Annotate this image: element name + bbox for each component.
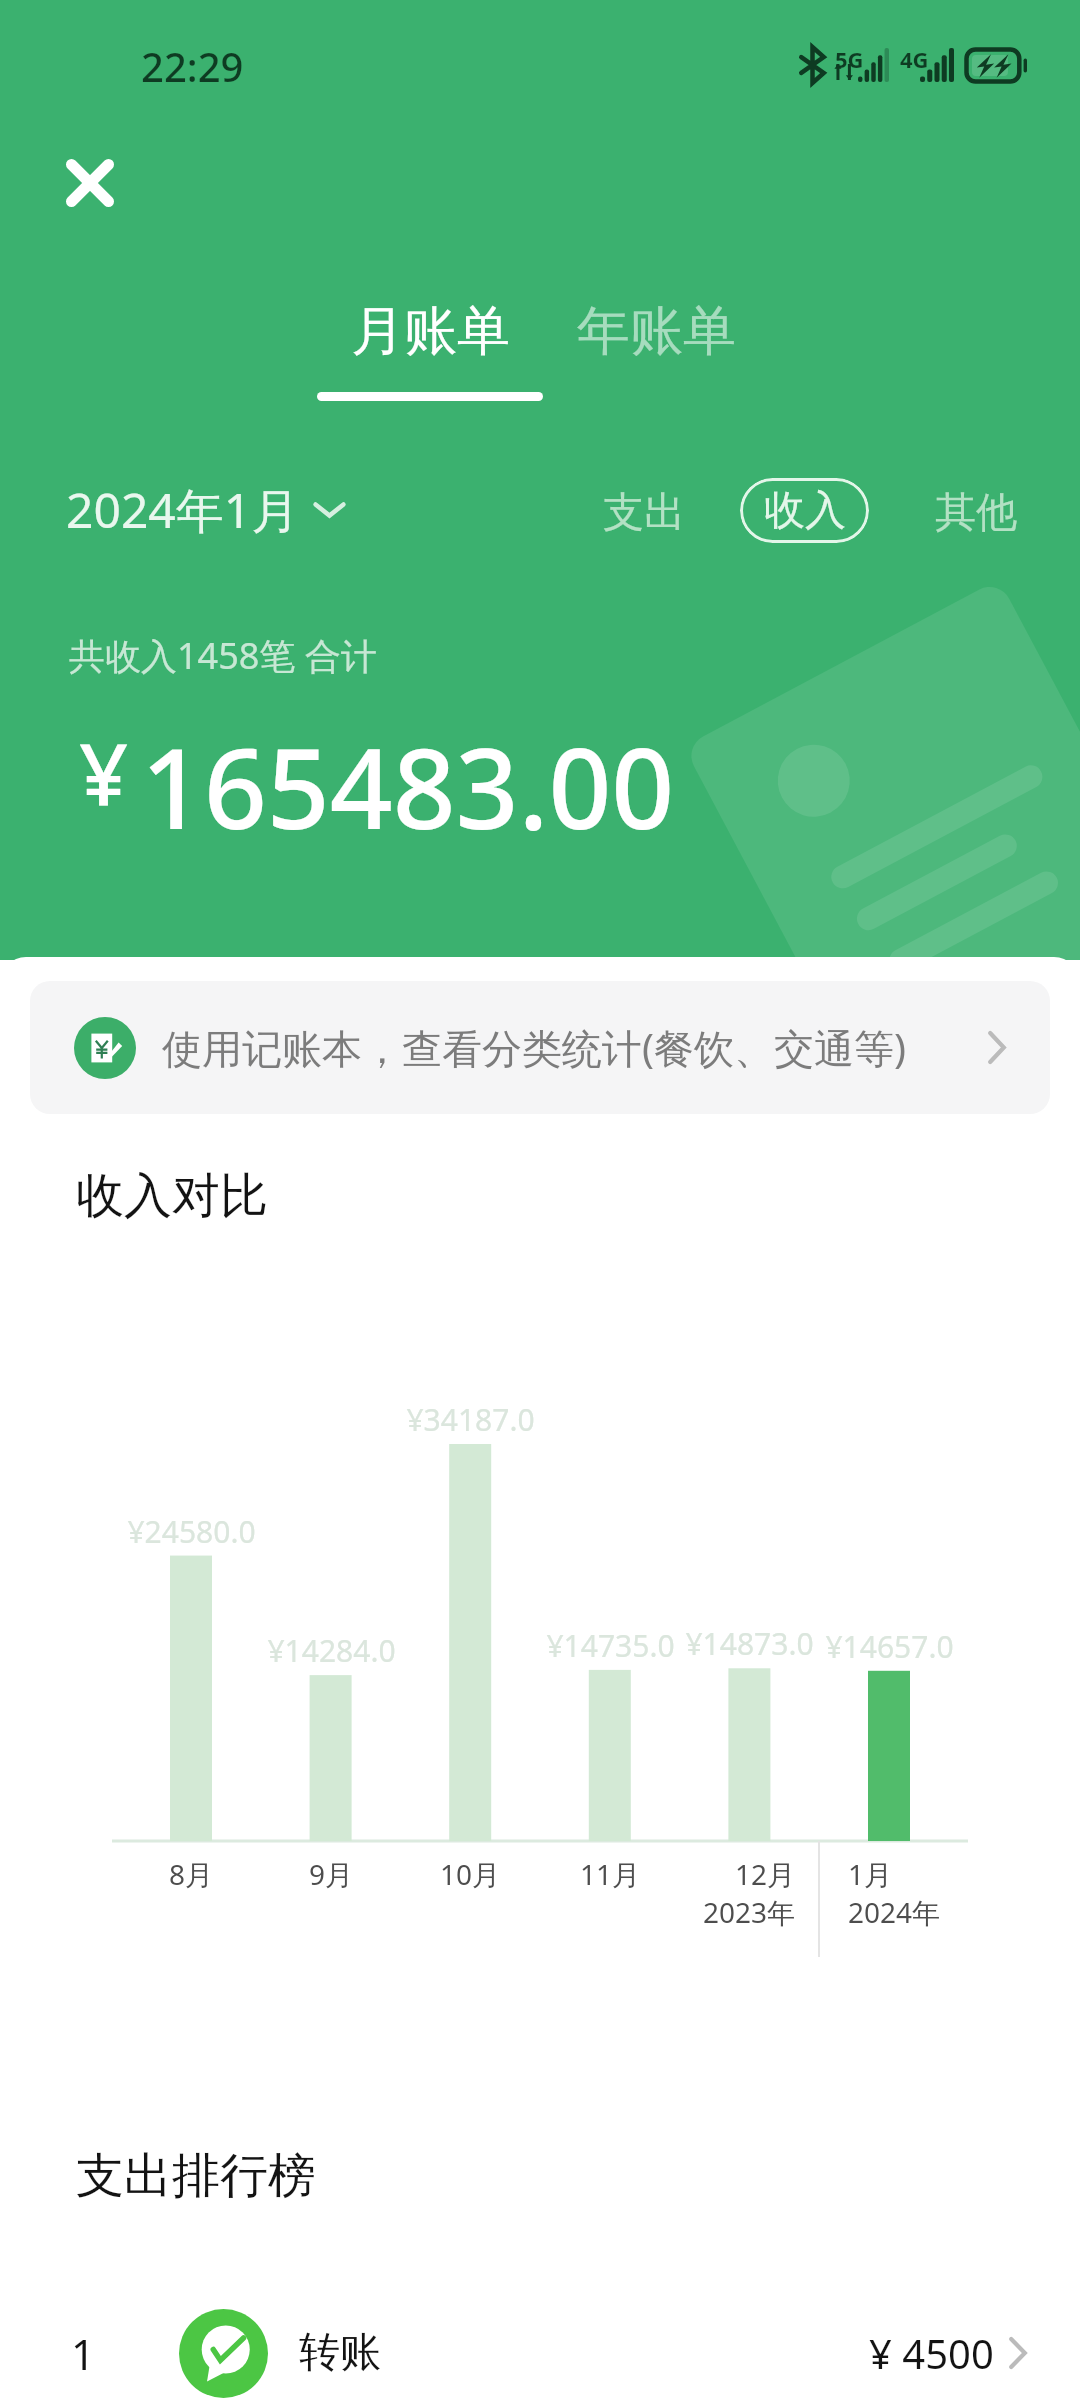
button[interactable]: 支出 <box>593 475 695 551</box>
staticText: 2023年 <box>703 1893 796 1931</box>
staticText: ¥24580.0 <box>127 1511 256 1552</box>
button[interactable]: 月账单 <box>317 290 543 401</box>
staticText: 8月 <box>169 1855 214 1893</box>
staticText: 1月 <box>848 1855 893 1893</box>
staticText: 2024年 <box>848 1893 941 1931</box>
staticText: 10月 <box>440 1855 501 1893</box>
staticText: 转账 <box>299 2327 381 2379</box>
staticText: 22:29 <box>141 39 244 93</box>
button[interactable]: 收入 <box>740 478 869 543</box>
button[interactable]: 使用记账本，查看分类统计(餐饮、交通等) <box>30 981 1050 1114</box>
staticText: ¥14284.0 <box>267 1630 396 1671</box>
button[interactable]: 2024年1月 <box>66 471 345 549</box>
staticText: ¥ 4500 <box>869 2326 994 2380</box>
staticText: 12月 <box>735 1855 796 1893</box>
staticText: 9月 <box>309 1855 354 1893</box>
button[interactable]: 年账单 <box>561 290 752 373</box>
staticText: 支出排行榜 <box>76 2146 316 2206</box>
staticText: 5G <box>835 44 864 74</box>
staticText: 165483.00 <box>141 711 675 861</box>
staticText: 4G <box>900 44 929 74</box>
button[interactable]: 1 <box>0 2303 1080 2400</box>
button[interactable]: 其他 <box>925 475 1027 551</box>
staticText: 1 <box>71 2325 96 2382</box>
staticText: 11月 <box>580 1855 641 1893</box>
staticText: 月账单 <box>351 298 510 365</box>
staticText: 共收入1458笔 合计 <box>69 631 377 680</box>
staticText: 支出 <box>603 487 685 539</box>
staticText: ¥ <box>79 714 129 831</box>
staticText: 使用记账本，查看分类统计(餐饮、交通等) <box>162 1020 906 1075</box>
staticText: 其他 <box>935 487 1017 539</box>
staticText: ¥14735.0 <box>546 1625 675 1666</box>
staticText: ¥14657.0 <box>825 1626 954 1667</box>
staticText: 收入对比 <box>76 1166 268 1226</box>
staticText: ¥14873.0 <box>685 1623 814 1664</box>
button[interactable]: Close <box>45 138 135 228</box>
staticText: 2024年1月 <box>66 477 300 543</box>
staticText: 收入 <box>764 485 846 537</box>
staticText: 年账单 <box>577 298 736 365</box>
staticText: ¥34187.0 <box>406 1399 535 1440</box>
